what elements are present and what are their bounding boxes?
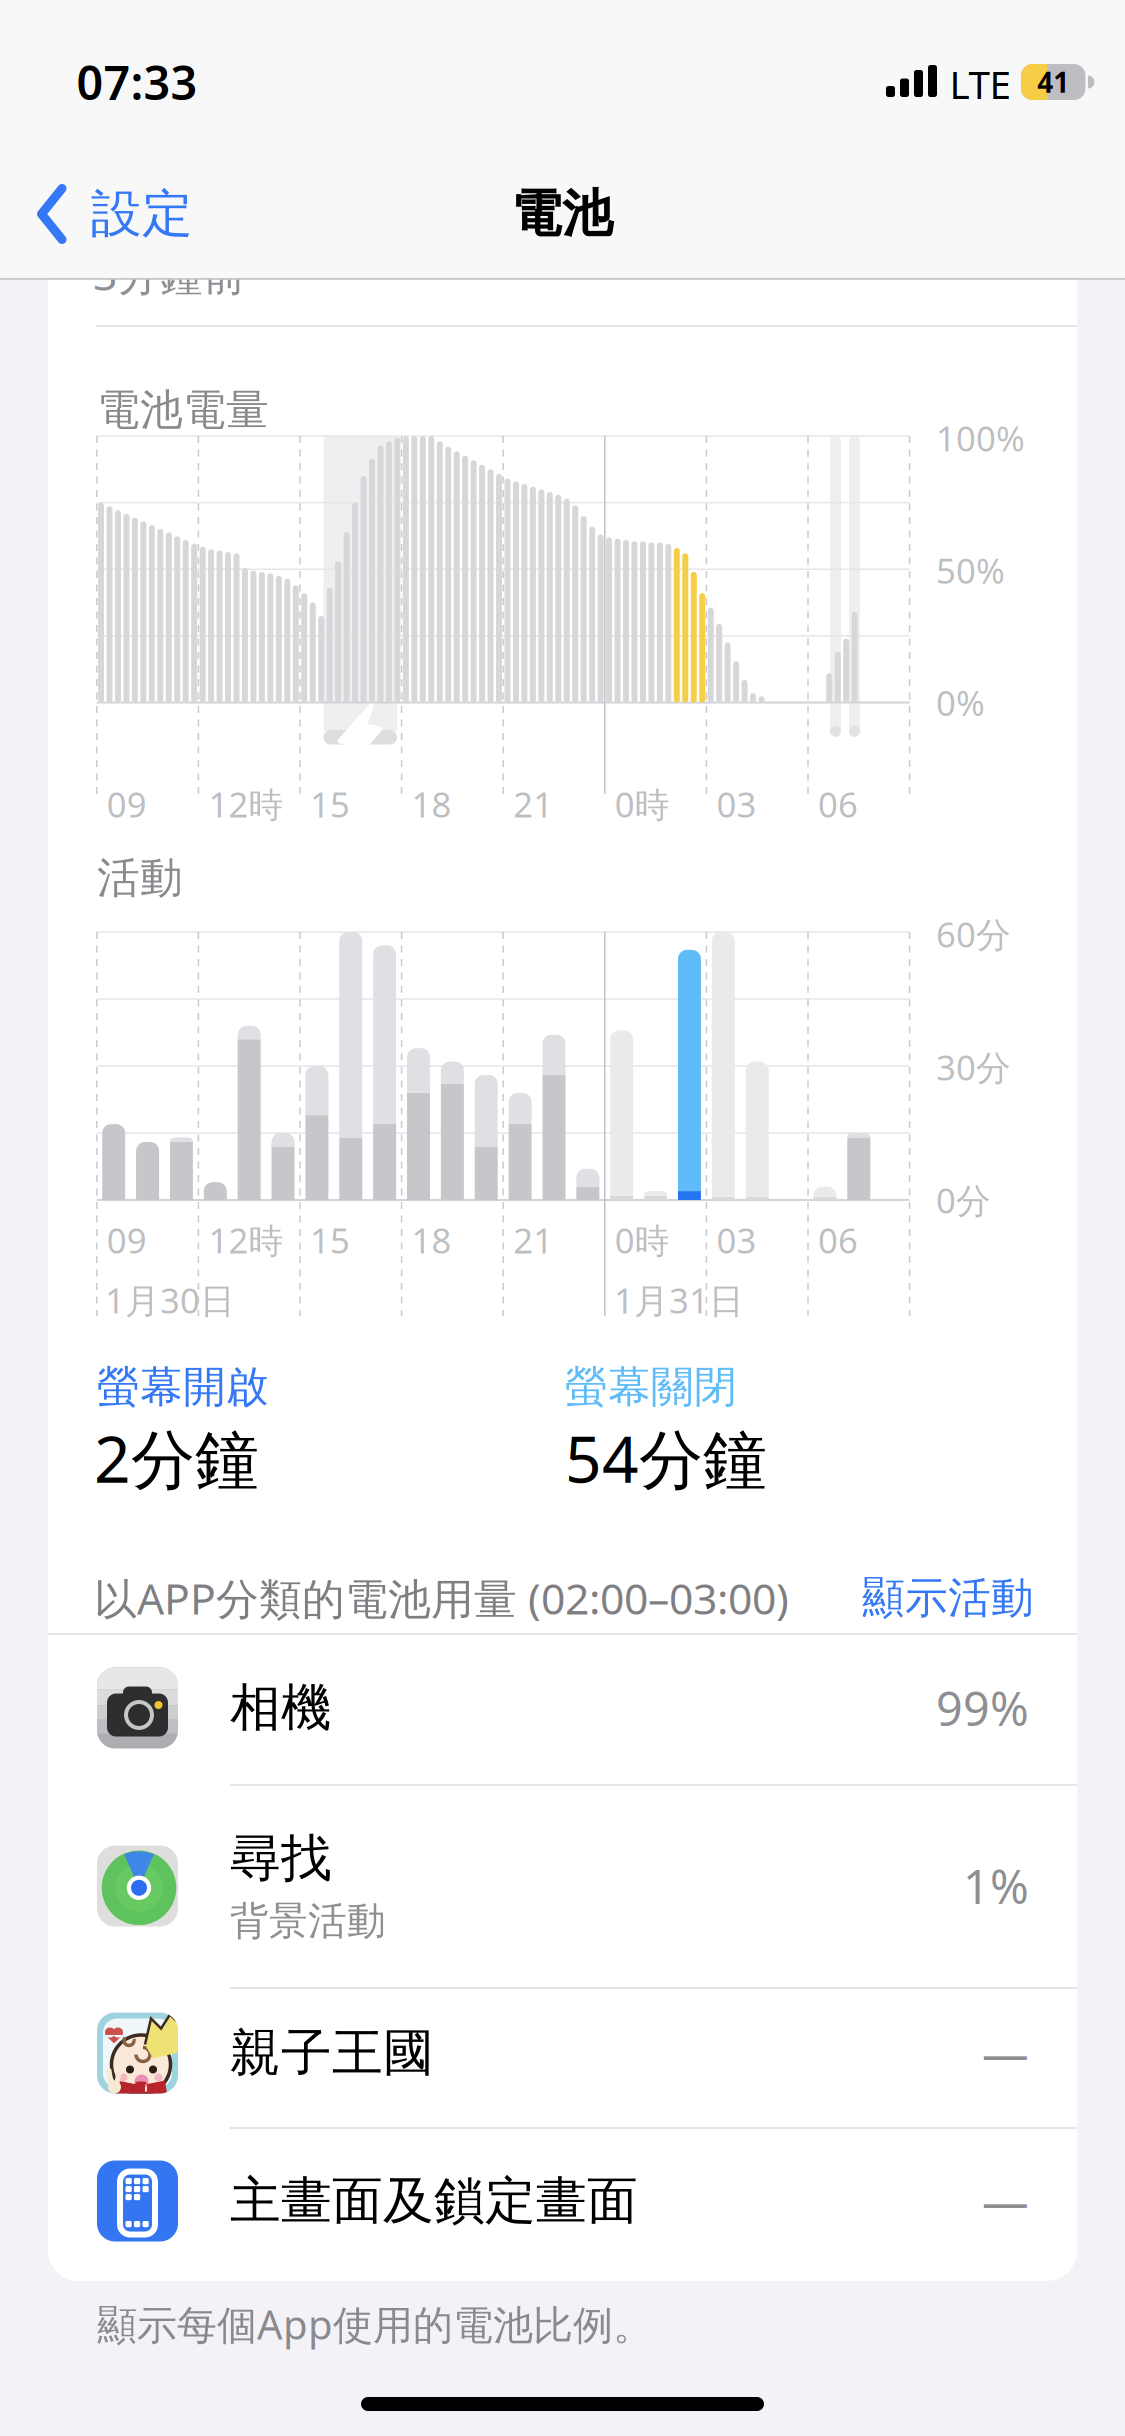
staticText: 1月30日	[105, 1277, 235, 1323]
staticText: 12時	[208, 781, 283, 827]
staticText: 0分	[936, 1177, 991, 1223]
staticText: 0%	[936, 679, 985, 725]
staticText: 電池電量	[97, 384, 269, 436]
button[interactable]: 主畫面及鎖定畫面	[97, 2126, 1029, 2276]
staticText: 0時	[615, 1217, 670, 1263]
staticText: 18	[412, 1217, 452, 1263]
staticText: 背景活動	[230, 1897, 386, 1945]
staticText: 主畫面及鎖定畫面	[230, 2170, 638, 2232]
staticText: 15	[310, 781, 350, 827]
staticText: 以APP分類的電池用量 (02:00–03:00)	[94, 1570, 789, 1626]
staticText: 0時	[615, 781, 670, 827]
staticText: 100%	[936, 415, 1025, 461]
staticText: 尋找	[230, 1827, 332, 1889]
staticText: 09	[107, 1217, 147, 1263]
staticText: 18	[412, 781, 452, 827]
button[interactable]: 尋找	[97, 1786, 1029, 1986]
button[interactable]: 設定	[37, 183, 193, 245]
staticText: 99%	[936, 1677, 1029, 1739]
staticText: —	[982, 2170, 1029, 2232]
staticText: 螢幕開啟	[97, 1361, 269, 1413]
staticText: 活動	[97, 852, 183, 904]
staticText: 06	[818, 1217, 858, 1263]
staticText: 1%	[963, 1855, 1029, 1917]
button[interactable]: 顯示活動	[818, 1561, 1078, 1635]
staticText: 1月31日	[614, 1277, 744, 1323]
staticText: 親子王國	[230, 2022, 434, 2084]
staticText: 50%	[936, 547, 1005, 593]
staticText: 06	[818, 781, 858, 827]
staticText: 03	[716, 1217, 756, 1263]
staticText: 60分	[936, 911, 1011, 957]
staticText: 07:33	[76, 51, 197, 113]
button[interactable]: 親子王國	[97, 1983, 1029, 2123]
staticText: 2分鐘	[94, 1415, 259, 1500]
staticText: 54分鐘	[565, 1415, 767, 1500]
staticText: 15	[310, 1217, 350, 1263]
staticText: 21	[513, 1217, 553, 1263]
staticText: 螢幕關閉	[565, 1361, 737, 1413]
staticText: 41	[1037, 63, 1069, 101]
staticText: —	[982, 2022, 1029, 2084]
staticText: 相機	[230, 1677, 332, 1739]
staticText: 電池	[511, 183, 613, 245]
button[interactable]: 相機	[97, 1633, 1029, 1783]
staticText: 21	[513, 781, 553, 827]
staticText: LTE	[949, 58, 1010, 110]
staticText: 顯示每個App使用的電池比例。	[97, 2297, 653, 2350]
staticText: 12時	[208, 1217, 283, 1263]
staticText: 顯示活動	[862, 1572, 1034, 1624]
staticText: 09	[107, 781, 147, 827]
staticText: 30分	[936, 1044, 1011, 1090]
staticText: 3分鐘前	[93, 246, 246, 302]
staticText: 03	[716, 781, 756, 827]
staticText: 設定	[91, 183, 193, 245]
